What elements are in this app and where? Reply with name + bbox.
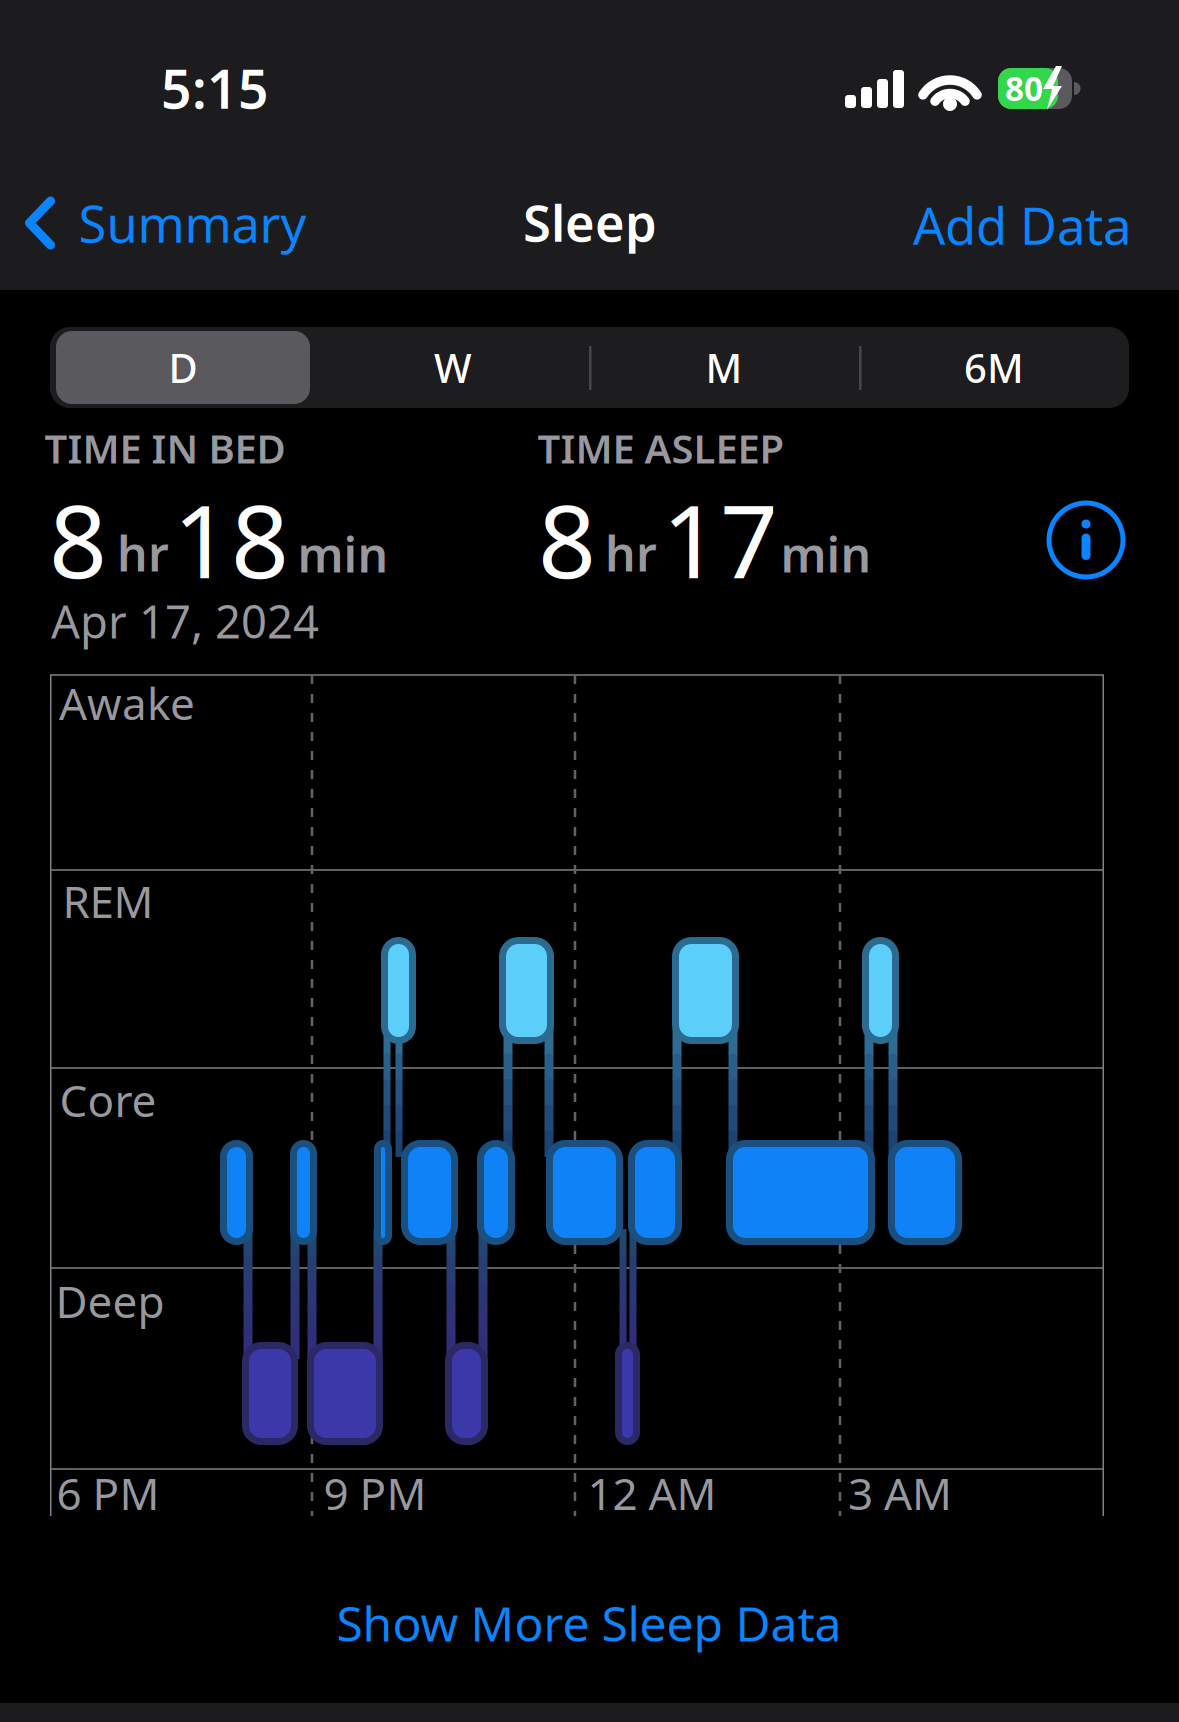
staticText: M <box>705 341 742 394</box>
staticText: 17 <box>662 472 778 606</box>
staticText: Apr 17, 2024 <box>51 591 319 651</box>
button[interactable]: About Sleep Data <box>1049 503 1123 577</box>
staticText: Core <box>59 1071 156 1129</box>
staticText: Add Data <box>913 191 1131 259</box>
button[interactable]: Summary <box>25 189 306 257</box>
staticText: 6 PM <box>56 1464 159 1522</box>
staticText: TIME ASLEEP <box>537 421 784 474</box>
staticText: min <box>297 522 388 586</box>
staticText: TIME IN BED <box>44 421 285 474</box>
staticText: Show More Sleep Data <box>336 1591 841 1655</box>
staticText: 3 AM <box>848 1464 952 1522</box>
staticText: hr <box>605 521 657 585</box>
button[interactable]: W <box>326 331 580 404</box>
staticText: Summary <box>78 189 306 257</box>
staticText: W <box>434 341 472 394</box>
staticText: 8 <box>538 472 596 606</box>
button[interactable]: Show More Sleep Data <box>336 1591 841 1655</box>
button[interactable]: D <box>56 331 310 404</box>
staticText: Deep <box>55 1272 164 1330</box>
button[interactable]: M <box>597 331 851 404</box>
staticText: 80 <box>1005 66 1043 110</box>
staticText: 6M <box>964 341 1024 394</box>
staticText: Awake <box>59 674 195 732</box>
staticText: 5:15 <box>161 53 269 123</box>
staticText: min <box>780 522 871 586</box>
staticText: D <box>168 341 197 394</box>
staticText: hr <box>117 521 169 585</box>
staticText: 18 <box>173 472 289 606</box>
staticText: REM <box>62 872 153 930</box>
staticText: 9 PM <box>323 1464 426 1522</box>
staticText: 8 <box>49 472 107 606</box>
staticText: 12 AM <box>587 1464 716 1522</box>
button[interactable]: Add Data <box>913 191 1131 259</box>
button[interactable]: 6M <box>867 331 1121 404</box>
staticText: Sleep <box>523 188 657 256</box>
